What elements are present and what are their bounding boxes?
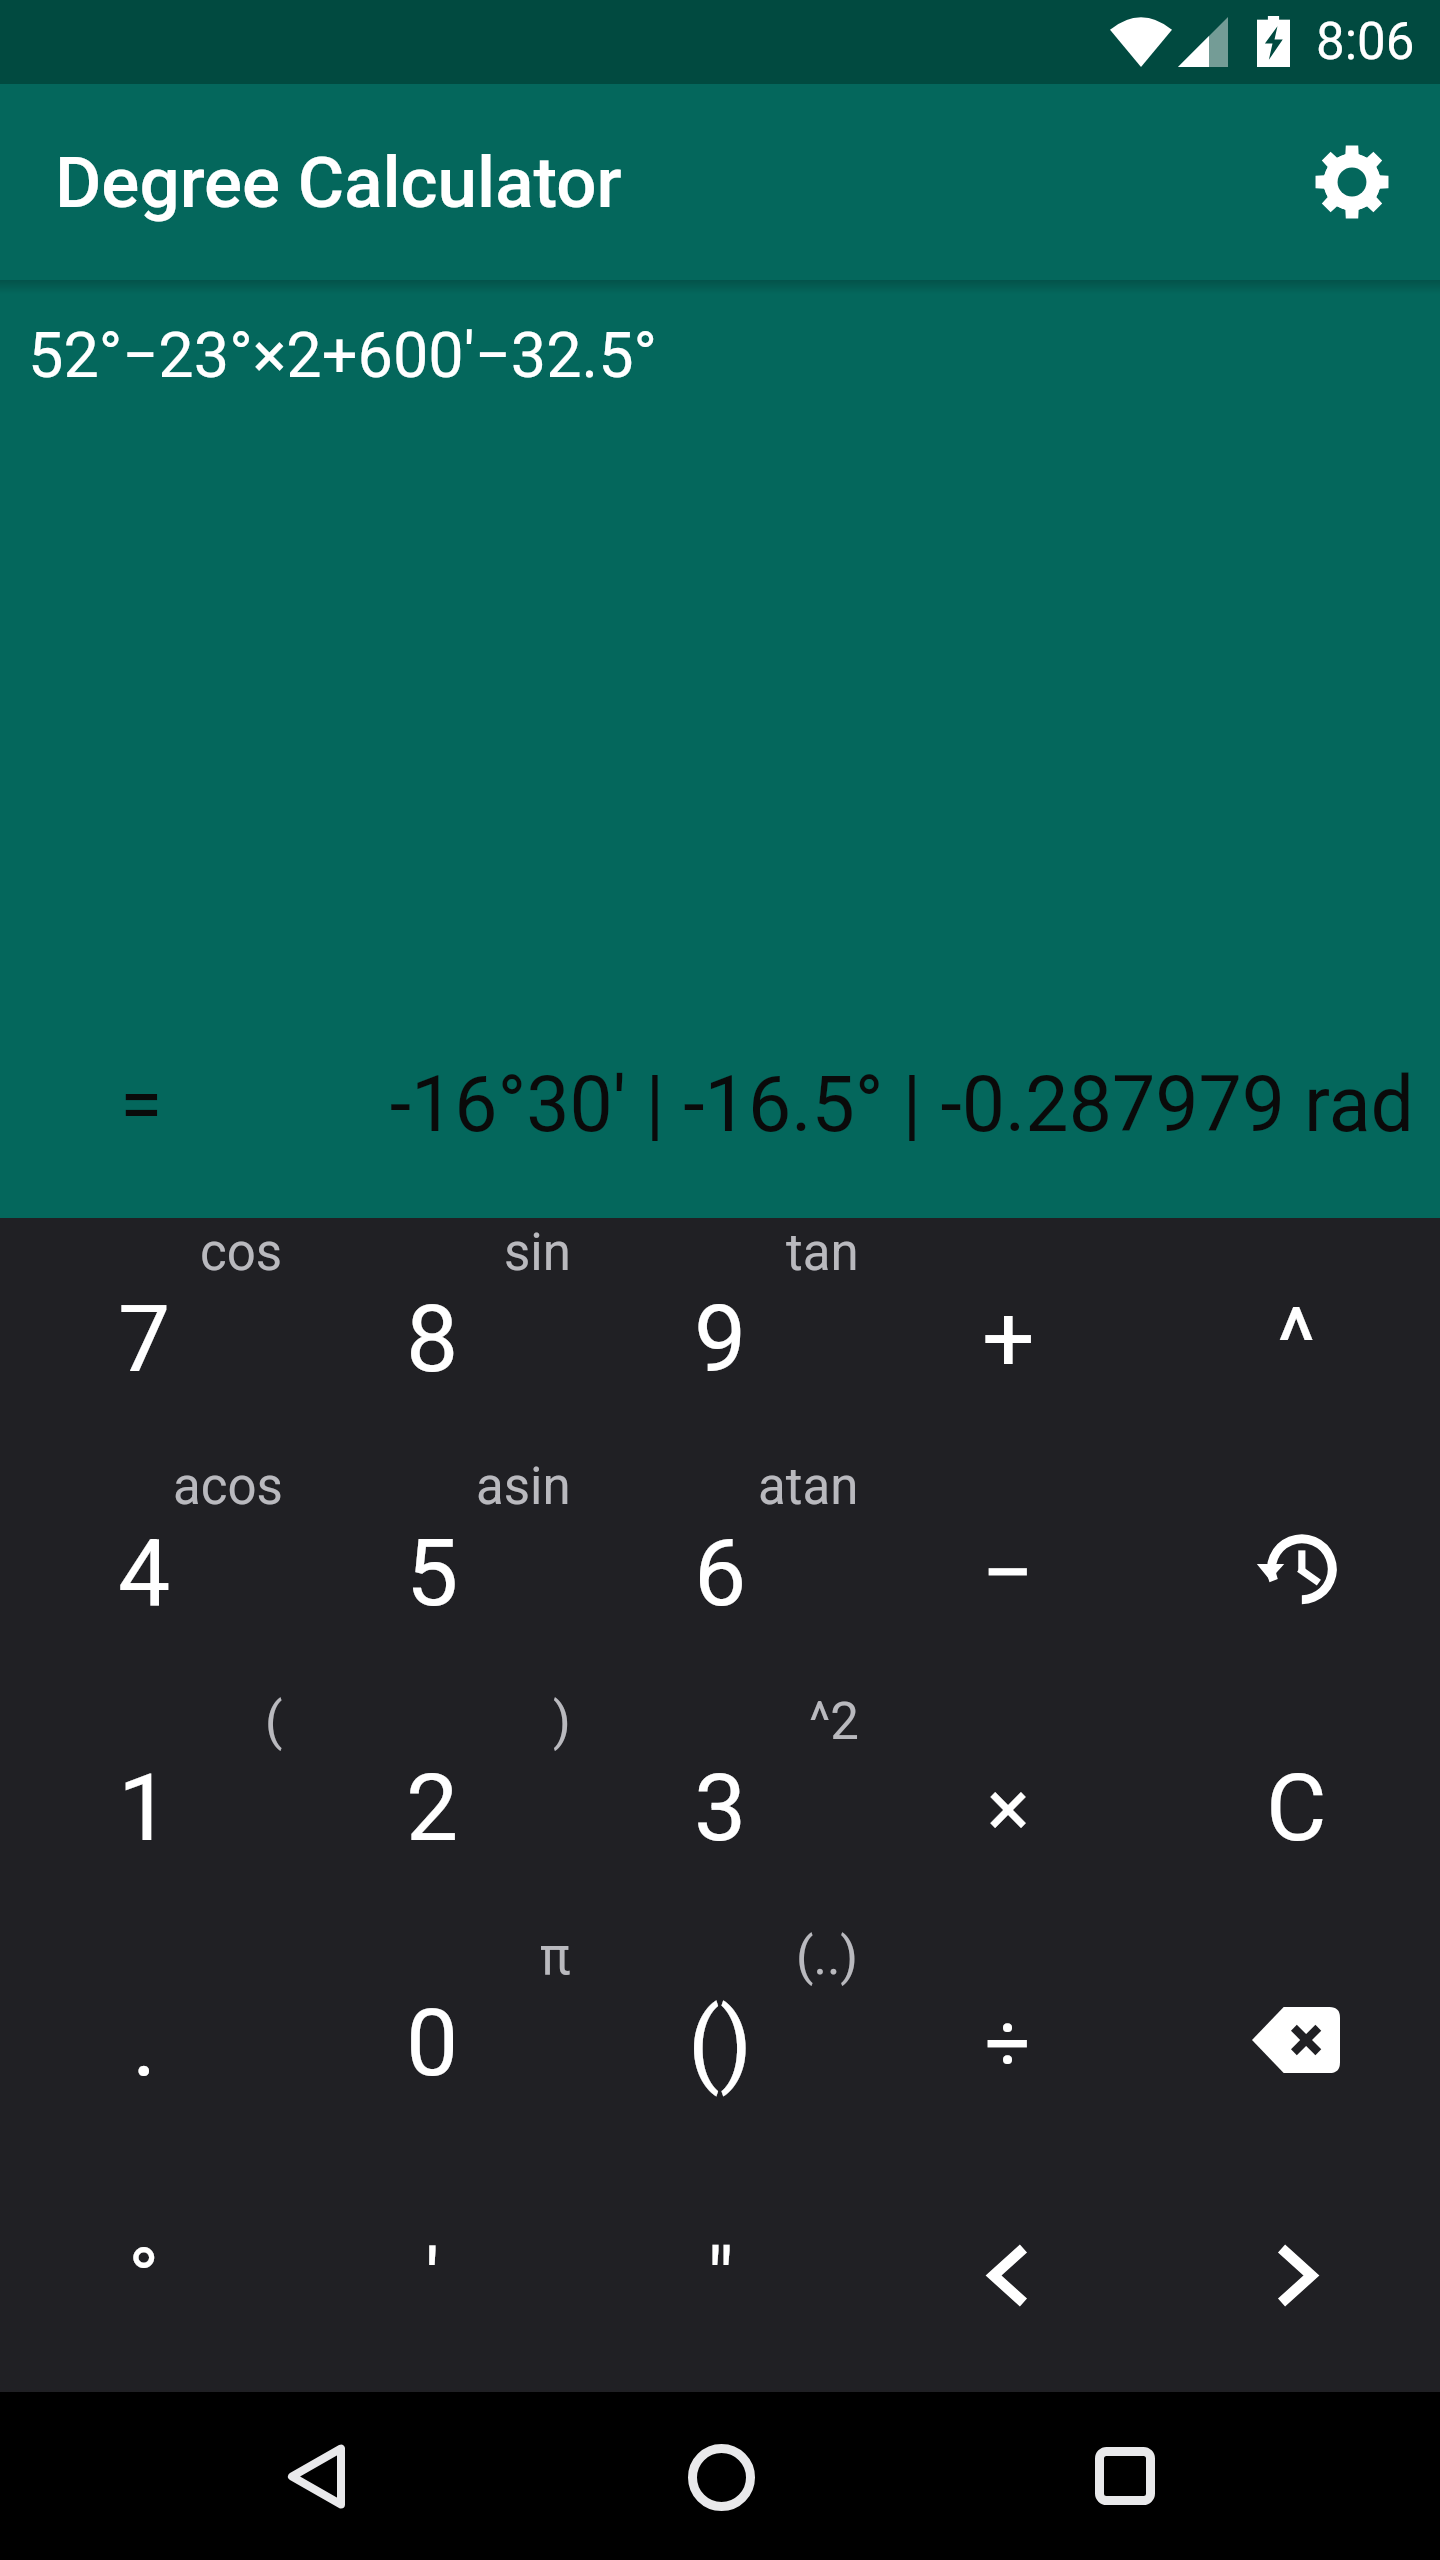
button[interactable]: Back [226,2396,406,2556]
staticText: 9 [694,1285,747,1394]
staticText: ° [128,2229,160,2327]
button[interactable]: Next [1152,2157,1440,2392]
button[interactable]: Home [631,2397,811,2557]
button[interactable]: − [864,1452,1152,1687]
button[interactable]: ' [288,2157,576,2392]
button[interactable]: . [0,1922,288,2157]
staticText: − [981,1519,1035,1628]
staticText: (..) [796,1927,859,1987]
staticText: -16°30' | -16.5° | -0.287979 rad [163,1060,1414,1150]
staticText: acos [173,1457,283,1517]
staticText: C [1266,1754,1327,1863]
button[interactable]: π [288,1922,576,2157]
staticText: ' [425,2230,440,2328]
staticText: 6 [694,1519,747,1628]
button[interactable]: ÷ [864,1922,1152,2157]
staticText: 2 [406,1754,459,1863]
button[interactable]: Recents [1035,2396,1215,2556]
staticText: tan [786,1223,859,1283]
button[interactable]: Backspace [1152,1922,1440,2157]
staticText: Degree Calculator [55,141,622,224]
staticText: cos [200,1223,283,1283]
staticText: ( [265,1692,283,1752]
button[interactable]: Settings [1292,122,1412,242]
button[interactable]: × [864,1687,1152,1922]
button[interactable]: acos [0,1452,288,1687]
staticText: 1 [118,1754,171,1863]
button[interactable]: ° [0,2157,288,2392]
staticText: 8:06 [1316,12,1415,72]
staticText: " [707,2230,734,2328]
staticText: . [132,1989,157,2098]
staticText: atan [758,1457,859,1517]
button[interactable]: cos [0,1218,288,1452]
button[interactable]: C [1152,1687,1440,1922]
button[interactable]: + [864,1218,1152,1452]
button[interactable]: Previous [864,2157,1152,2392]
staticText: + [982,1285,1035,1394]
button[interactable]: ^2 [576,1687,864,1922]
button[interactable]: " [576,2157,864,2392]
button[interactable]: tan [576,1218,864,1452]
staticText: = [120,1060,163,1150]
staticText: ÷ [985,1997,1031,2091]
button[interactable]: asin [288,1452,576,1687]
staticText: 7 [118,1285,171,1394]
staticText: ^ [1277,1288,1316,1396]
staticText: sin [504,1223,571,1283]
staticText: π [540,1927,571,1987]
staticText: × [987,1762,1030,1856]
staticText: 3 [694,1754,747,1863]
staticText: 5 [406,1519,459,1628]
staticText: 4 [118,1519,171,1628]
staticText: 0 [406,1989,459,2098]
staticText: () [688,1989,753,2098]
staticText: 8 [406,1285,459,1394]
button[interactable]: ( [0,1687,288,1922]
button[interactable]: History [1152,1452,1440,1687]
staticText: asin [476,1457,571,1517]
button[interactable]: atan [576,1452,864,1687]
staticText: 52°−23°×2+600'−32.5° [28,319,658,393]
button[interactable]: ) [288,1687,576,1922]
staticText: ) [553,1692,571,1752]
button[interactable]: sin [288,1218,576,1452]
button[interactable]: ^ [1152,1218,1440,1452]
staticText: ^2 [809,1692,859,1752]
button[interactable]: (..) [576,1922,864,2157]
